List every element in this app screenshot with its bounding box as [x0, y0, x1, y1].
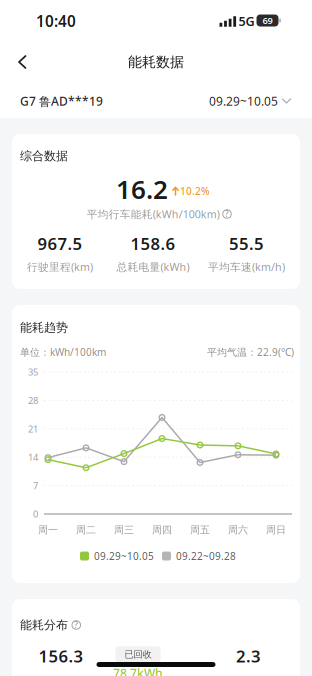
staticText: ?: [225, 209, 229, 219]
button[interactable]: 09.29~10.05: [80, 549, 154, 563]
staticText: 28: [28, 394, 38, 407]
staticText: 平均行车能耗(kWh/100km): [87, 207, 220, 221]
button[interactable]: 09.22~09.28: [162, 549, 236, 563]
staticText: 21: [28, 423, 38, 435]
staticText: 10.2%: [180, 184, 210, 198]
staticText: 78.7kWh: [113, 665, 163, 676]
button[interactable]: About average consumption: [87, 207, 231, 221]
staticText: 综合数据: [20, 149, 68, 163]
staticText: 行驶里程(km): [27, 260, 93, 274]
staticText: 16.2: [116, 171, 168, 207]
staticText: 能耗数据: [128, 53, 184, 71]
staticText: 周四: [152, 524, 172, 536]
staticText: 周二: [76, 524, 96, 536]
staticText: 158.6: [130, 232, 175, 255]
button[interactable]: 09.29~10.05: [205, 89, 295, 113]
staticText: 10:40: [36, 11, 76, 31]
staticText: 周一: [38, 524, 58, 536]
staticText: 55.5: [229, 232, 264, 255]
staticText: 平均车速(km/h): [208, 260, 285, 274]
staticText: 单位：kWh/100km: [20, 345, 106, 359]
button[interactable]: Back: [4, 42, 48, 82]
staticText: 已回收: [124, 649, 151, 660]
staticText: 2.3: [236, 645, 261, 667]
staticText: 09.22~09.28: [176, 549, 236, 563]
staticText: 156.3: [38, 645, 83, 667]
staticText: 平均气温：22.9(°C): [207, 345, 294, 359]
staticText: 能耗分布: [20, 618, 68, 632]
staticText: 5G: [238, 12, 254, 30]
staticText: 能耗趋势: [20, 320, 68, 335]
staticText: 周五: [190, 524, 210, 536]
staticText: 09.29~10.05: [209, 93, 278, 109]
staticText: 7: [33, 479, 38, 492]
staticText: 周六: [228, 524, 248, 536]
staticText: 69: [262, 14, 272, 27]
staticText: ?: [74, 620, 78, 630]
staticText: 14: [28, 451, 38, 463]
staticText: 总耗电量(kWh): [116, 260, 189, 274]
staticText: 967.5: [37, 232, 82, 255]
staticText: G7 鲁AD***19: [20, 93, 103, 109]
button[interactable]: About energy distribution: [20, 618, 80, 632]
staticText: 09.29~10.05: [94, 549, 154, 563]
staticText: 35: [28, 366, 38, 378]
staticText: 0: [33, 508, 38, 520]
staticText: 周三: [114, 524, 134, 536]
staticText: 周日: [266, 524, 286, 536]
